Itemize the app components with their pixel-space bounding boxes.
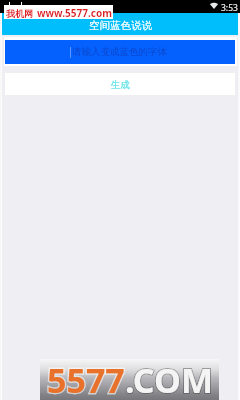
button[interactable]: 请输入变成蓝色的字体 — [5, 40, 235, 64]
staticText: 我机网 — [6, 8, 33, 19]
staticText: 3:53 — [221, 2, 238, 14]
button[interactable]: 生成 — [5, 73, 235, 95]
staticText: 5577 — [47, 357, 125, 398]
staticText: .COM — [125, 357, 213, 398]
other: Wi-Fi signal — [210, 3, 218, 9]
button[interactable]: 空间蓝色说说 — [0, 13, 240, 35]
staticText: 空间蓝色说说 — [89, 19, 152, 32]
staticText: .COM — [125, 357, 213, 398]
staticText: www.5577.com — [37, 6, 112, 20]
staticText: 生成 — [111, 79, 130, 91]
staticText: 请输入变成蓝色的字体 — [72, 46, 167, 58]
staticText: 5577 — [47, 357, 125, 398]
